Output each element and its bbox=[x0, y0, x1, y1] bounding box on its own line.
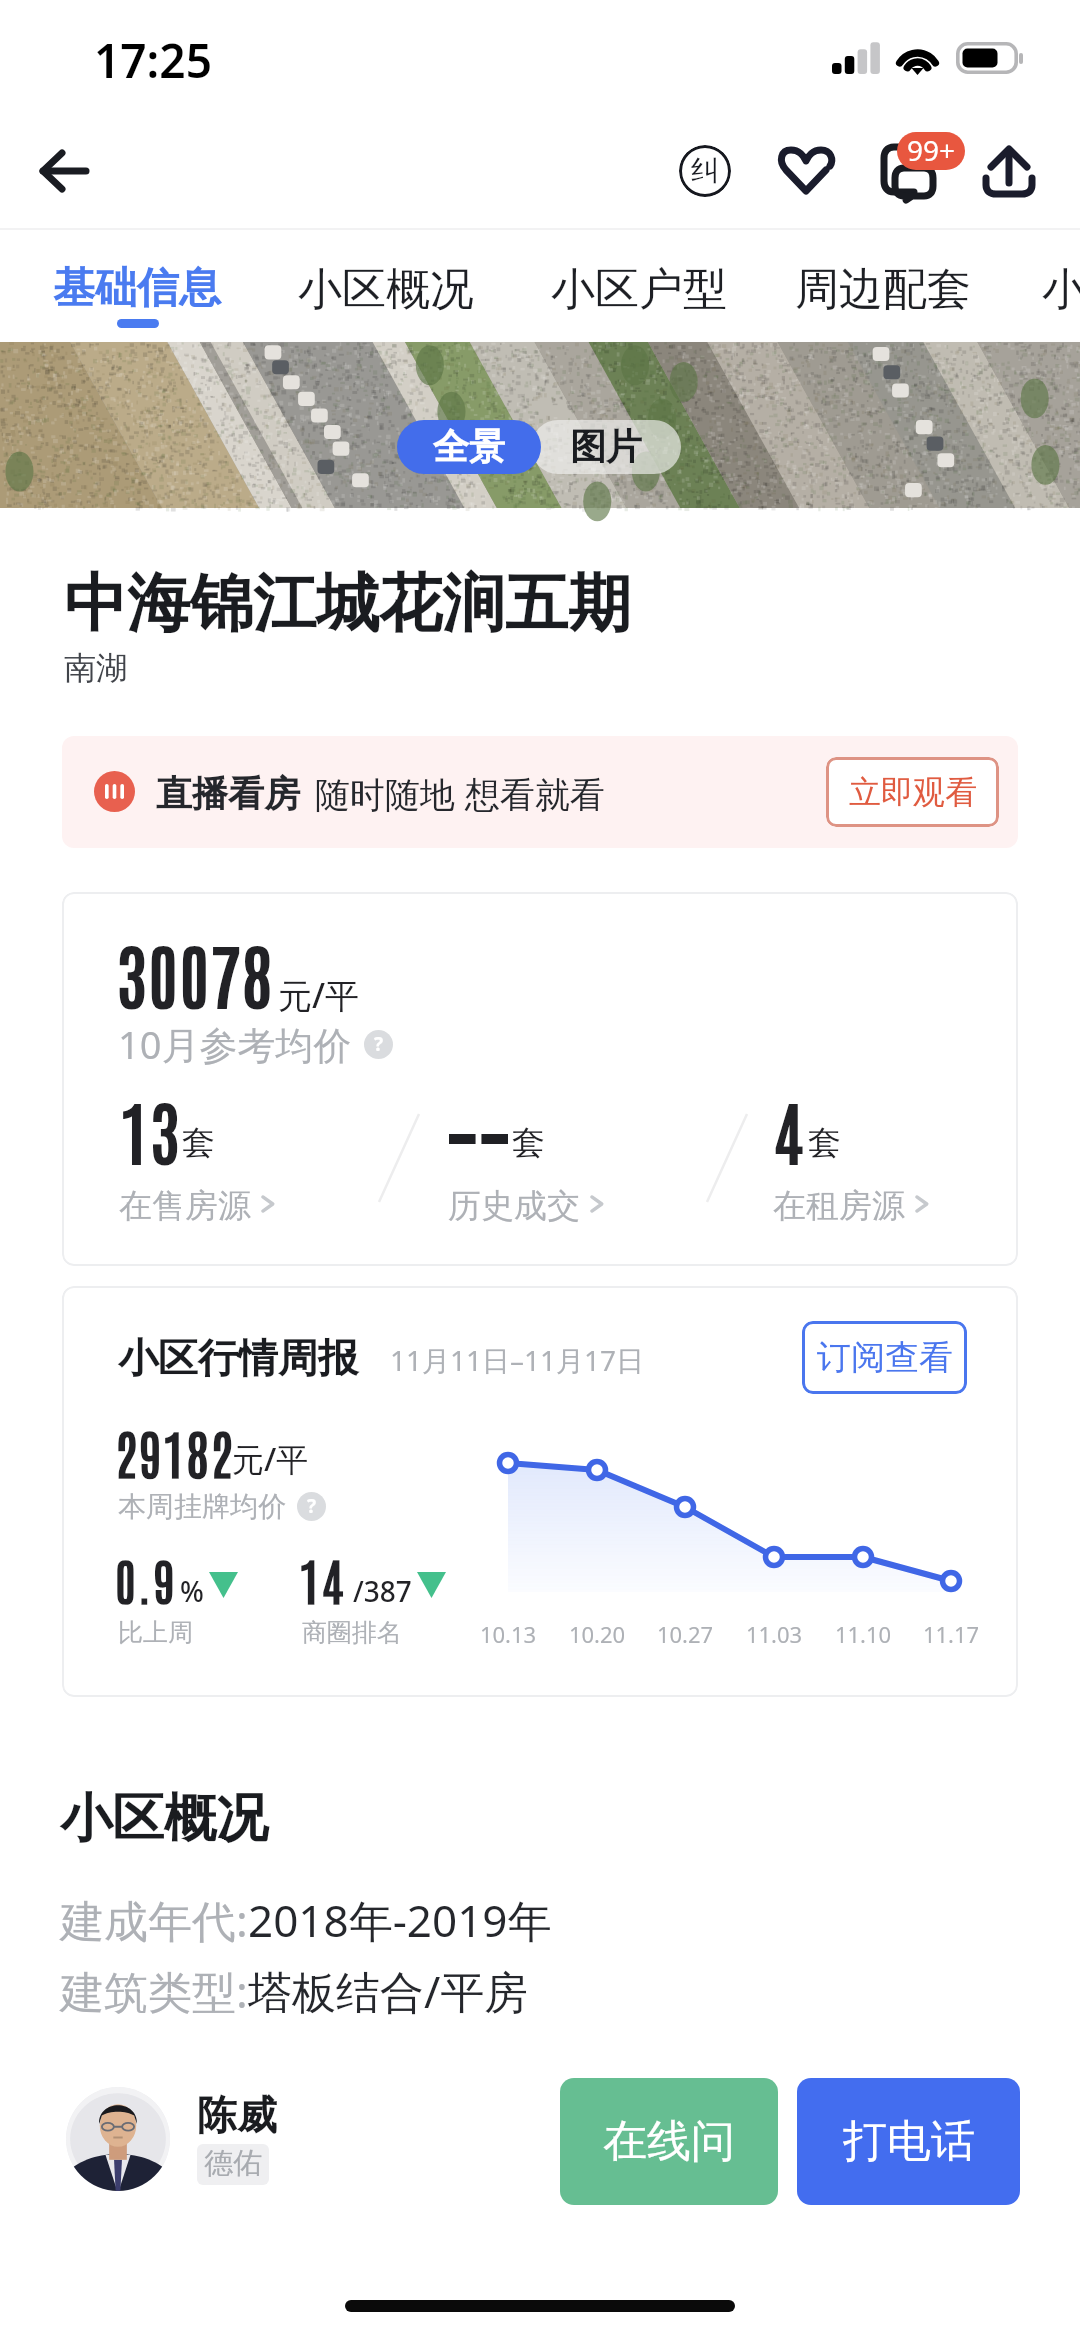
staticText: 10.20 bbox=[547, 1619, 647, 1649]
button[interactable]: 打电话 bbox=[797, 2078, 1020, 2205]
staticText: 商圈排名 bbox=[302, 1617, 402, 1648]
staticText: /387 bbox=[353, 1572, 412, 1610]
staticText: 13 bbox=[120, 1085, 182, 1173]
staticText: 中海锦江城花涧五期 bbox=[64, 564, 631, 643]
staticText: 套 bbox=[808, 1122, 841, 1164]
button[interactable]: Favorite bbox=[766, 133, 846, 213]
button[interactable]: 4 bbox=[760, 1085, 1012, 1225]
staticText: 小区户型 bbox=[551, 262, 727, 317]
staticText: 塔板结合/平房 bbox=[248, 1961, 529, 2021]
button[interactable]: 图片 bbox=[531, 420, 681, 474]
staticText: 直播看房 bbox=[156, 771, 300, 816]
staticText: 10.13 bbox=[458, 1619, 558, 1649]
staticText: 基础信息 bbox=[53, 262, 221, 315]
staticText: 11.17 bbox=[901, 1619, 1001, 1649]
staticText: 打电话 bbox=[843, 2114, 975, 2169]
staticText: 4 bbox=[774, 1085, 805, 1173]
staticText: 比上周 bbox=[118, 1617, 193, 1648]
staticText: 历史成交 bbox=[448, 1185, 580, 1227]
staticText: 套 bbox=[182, 1122, 215, 1164]
staticText: 立即观看 bbox=[849, 772, 977, 812]
staticText: 想看就看 bbox=[465, 773, 605, 817]
button[interactable]: Back bbox=[28, 136, 102, 210]
button[interactable]: 小 bbox=[1026, 252, 1080, 327]
staticText: 纠 bbox=[691, 153, 719, 188]
staticText: 小区概况 bbox=[60, 1786, 268, 1852]
staticText: 德佑 bbox=[204, 2145, 262, 2182]
button[interactable]: 周边配套 bbox=[779, 252, 987, 327]
staticText: 0.9 bbox=[115, 1546, 177, 1611]
button[interactable]: Share bbox=[978, 138, 1042, 202]
button[interactable]: 立即观看 bbox=[826, 757, 999, 827]
staticText: 随时随地 bbox=[315, 773, 455, 817]
staticText: 陈威 bbox=[197, 2090, 277, 2140]
staticText: 10月参考均价 bbox=[118, 1018, 352, 1070]
staticText: 14 bbox=[299, 1546, 346, 1611]
staticText: ? bbox=[374, 1031, 384, 1057]
staticText: ? bbox=[307, 1493, 317, 1519]
staticText: 南湖 bbox=[64, 648, 128, 688]
staticText: % bbox=[180, 1572, 204, 1610]
staticText: 11月11日–11月17日 bbox=[390, 1341, 645, 1379]
staticText: 在售房源 bbox=[119, 1185, 251, 1227]
staticText: 图片 bbox=[570, 424, 642, 469]
button[interactable]: 订阅查看 bbox=[802, 1321, 967, 1394]
staticText: 小区行情周报 bbox=[118, 1333, 358, 1383]
staticText: 套 bbox=[512, 1122, 545, 1164]
staticText: 2018年-2019年 bbox=[248, 1890, 552, 1950]
staticText: 订阅查看 bbox=[817, 1336, 953, 1379]
button[interactable]: Agent profile bbox=[66, 2087, 170, 2191]
button[interactable]: Messages bbox=[872, 126, 972, 226]
staticText: 建成年代: bbox=[60, 1890, 248, 1950]
button[interactable]: 小区户型 bbox=[535, 252, 743, 327]
staticText: 11.10 bbox=[813, 1619, 913, 1649]
staticText: 29182 bbox=[115, 1418, 235, 1485]
staticText: 全景 bbox=[433, 424, 505, 469]
button[interactable]: 全景 bbox=[397, 420, 541, 474]
staticText: 30078 bbox=[117, 927, 274, 1018]
button[interactable]: 基础信息 bbox=[37, 252, 237, 325]
button[interactable]: 13 bbox=[106, 1085, 358, 1225]
staticText: 小区概况 bbox=[298, 262, 474, 317]
staticText: 周边配套 bbox=[795, 262, 971, 317]
button[interactable]: 在线问 bbox=[560, 2078, 778, 2205]
button[interactable]: 小区概况 bbox=[282, 252, 490, 327]
staticText: 在线问 bbox=[603, 2114, 735, 2169]
staticText: 小 bbox=[1042, 262, 1080, 317]
staticText: 元/平 bbox=[232, 1437, 309, 1481]
staticText: 11.03 bbox=[724, 1619, 824, 1649]
staticText: 在租房源 bbox=[773, 1185, 905, 1227]
staticText: 建筑类型: bbox=[60, 1961, 248, 2021]
button[interactable]: 套 bbox=[435, 1085, 687, 1225]
staticText: 10.27 bbox=[635, 1619, 735, 1649]
button[interactable]: Report correction bbox=[661, 132, 749, 220]
staticText: 元/平 bbox=[278, 972, 360, 1018]
staticText: 17:25 bbox=[94, 29, 212, 92]
button[interactable]: 直播看房 bbox=[62, 736, 1018, 848]
staticText: 99+ bbox=[907, 132, 956, 169]
staticText: 本周挂牌均价 bbox=[118, 1489, 286, 1524]
